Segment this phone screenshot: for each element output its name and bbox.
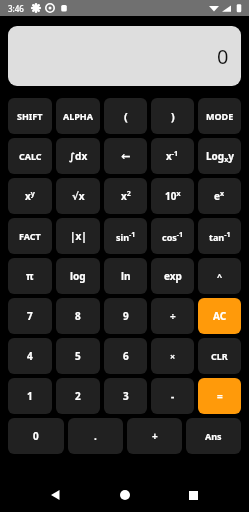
button[interactable]: ( xyxy=(104,98,147,134)
button[interactable]: ÷ xyxy=(151,298,194,334)
button[interactable]: CALC xyxy=(8,138,52,174)
button[interactable]: 8 xyxy=(56,298,100,334)
staticText: sin-1 xyxy=(116,230,136,243)
button[interactable]: MODE xyxy=(198,98,241,134)
staticText: ( xyxy=(124,109,128,124)
staticText: . xyxy=(94,429,97,443)
button[interactable]: 0 xyxy=(8,26,241,86)
staticText: 0 xyxy=(33,429,39,443)
staticText: 4 xyxy=(27,349,33,363)
staticText: cos-1 xyxy=(162,230,184,243)
staticText: = xyxy=(217,389,223,403)
staticText: 5 xyxy=(75,349,81,363)
button[interactable]: xy xyxy=(8,178,52,214)
staticText: tan-1 xyxy=(209,230,231,243)
staticText: 2 xyxy=(75,389,81,403)
staticText: MODE xyxy=(206,110,234,122)
staticText: 3:46 xyxy=(8,3,24,14)
staticText: xy xyxy=(25,189,35,203)
staticText: |x| xyxy=(70,229,87,243)
staticText: ex xyxy=(214,189,225,203)
staticText: AC xyxy=(213,309,227,323)
staticText: 1 xyxy=(27,389,33,403)
button[interactable]: log xyxy=(56,258,100,294)
staticText: ) xyxy=(171,109,175,124)
staticText: √x xyxy=(72,189,85,203)
button[interactable]: x2 xyxy=(104,178,147,214)
staticText: 0 xyxy=(217,43,229,70)
button[interactable]: |x| xyxy=(56,218,100,254)
button[interactable]: 6 xyxy=(104,338,147,374)
staticText: CLR xyxy=(211,350,228,362)
button[interactable]: tan-1 xyxy=(198,218,241,254)
staticText: FACT xyxy=(19,230,41,242)
button[interactable]: - xyxy=(151,378,194,414)
staticText: × xyxy=(170,350,176,362)
staticText: π xyxy=(26,269,34,283)
button[interactable]: Ans xyxy=(186,418,241,454)
button[interactable]: 3 xyxy=(104,378,147,414)
staticText: ← xyxy=(121,150,131,163)
button[interactable]: FACT xyxy=(8,218,52,254)
button[interactable]: exp xyxy=(151,258,194,294)
staticText: - xyxy=(171,389,175,403)
staticText: Ans xyxy=(205,430,222,442)
button[interactable]: CLR xyxy=(198,338,241,374)
button[interactable]: . xyxy=(68,418,123,454)
staticText: ∫dx xyxy=(69,149,88,163)
button[interactable]: = xyxy=(198,378,241,414)
button[interactable]: 2 xyxy=(56,378,100,414)
button[interactable]: ← xyxy=(104,138,147,174)
button[interactable]: 1 xyxy=(8,378,52,414)
button[interactable]: Logxy xyxy=(198,138,241,174)
staticText: 6 xyxy=(123,349,129,363)
button[interactable]: 5 xyxy=(56,338,100,374)
button[interactable]: x-1 xyxy=(151,138,194,174)
button[interactable]: + xyxy=(127,418,182,454)
button[interactable]: ALPHA xyxy=(56,98,100,134)
button[interactable]: cos-1 xyxy=(151,218,194,254)
staticText: SHIFT xyxy=(17,110,43,122)
button[interactable]: ∫dx xyxy=(56,138,100,174)
button[interactable]: √x xyxy=(56,178,100,214)
staticText: 3 xyxy=(123,389,129,403)
staticText: exp xyxy=(164,269,182,283)
staticText: 9 xyxy=(123,309,129,323)
button[interactable]: × xyxy=(151,338,194,374)
button[interactable]: ) xyxy=(151,98,194,134)
button[interactable]: π xyxy=(8,258,52,294)
button[interactable]: Home xyxy=(113,483,137,507)
button[interactable]: 0 xyxy=(8,418,64,454)
button[interactable]: ln xyxy=(104,258,147,294)
staticText: 8 xyxy=(75,309,81,323)
button[interactable]: 10x xyxy=(151,178,194,214)
staticText: ln xyxy=(121,269,131,283)
button[interactable]: 4 xyxy=(8,338,52,374)
staticText: ^ xyxy=(217,270,223,282)
staticText: CALC xyxy=(19,150,42,162)
button[interactable]: AC xyxy=(198,298,241,334)
staticText: Logxy xyxy=(206,149,234,164)
staticText: 7 xyxy=(27,309,33,323)
staticText: x2 xyxy=(121,189,131,203)
staticText: x-1 xyxy=(166,149,179,163)
staticText: 10x xyxy=(165,189,181,203)
button[interactable]: Recent apps xyxy=(181,483,205,507)
staticText: log xyxy=(70,269,86,283)
button[interactable]: Back xyxy=(44,483,68,507)
button[interactable]: 9 xyxy=(104,298,147,334)
button[interactable]: ^ xyxy=(198,258,241,294)
staticText: ALPHA xyxy=(63,110,93,122)
button[interactable]: SHIFT xyxy=(8,98,52,134)
button[interactable]: 7 xyxy=(8,298,52,334)
button[interactable]: ex xyxy=(198,178,241,214)
staticText: ÷ xyxy=(170,309,176,323)
staticText: + xyxy=(152,429,158,443)
button[interactable]: sin-1 xyxy=(104,218,147,254)
